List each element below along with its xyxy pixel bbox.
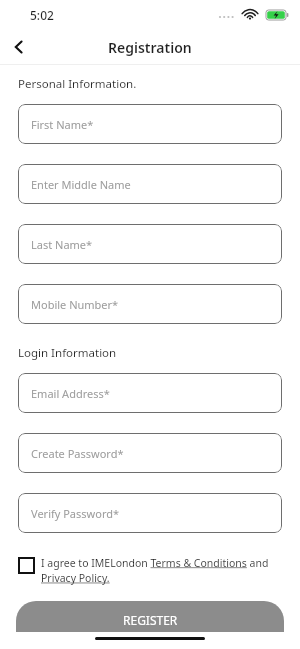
staticText: Personal Information. xyxy=(18,76,137,92)
staticText: Email Address* xyxy=(31,386,110,401)
staticText: Last Name* xyxy=(31,237,93,252)
staticText: Login Information xyxy=(18,345,117,361)
staticText: 5:02 xyxy=(30,7,54,23)
button[interactable]: REGISTER xyxy=(16,601,284,632)
staticText: Enter Middle Name xyxy=(31,177,131,192)
staticText: First Name* xyxy=(31,117,94,132)
button[interactable]: Verify Password* xyxy=(18,493,282,533)
staticText: Create Password* xyxy=(31,446,124,461)
button[interactable]: I agree to IMELondon Terms & Conditions … xyxy=(18,556,282,585)
staticText: REGISTER xyxy=(123,612,178,628)
staticText: Mobile Number* xyxy=(31,297,119,312)
button[interactable]: Create Password* xyxy=(18,433,282,473)
button[interactable]: Enter Middle Name xyxy=(18,164,282,204)
staticText: Registration xyxy=(108,38,192,57)
staticText: I agree to IMELondon Terms & Conditions … xyxy=(41,556,282,585)
button[interactable]: First Name* xyxy=(18,104,282,144)
button[interactable]: Back xyxy=(0,30,38,64)
button[interactable]: Email Address* xyxy=(18,373,282,413)
staticText: Verify Password* xyxy=(31,506,120,521)
button[interactable]: Mobile Number* xyxy=(18,284,282,324)
button[interactable]: Last Name* xyxy=(18,224,282,264)
